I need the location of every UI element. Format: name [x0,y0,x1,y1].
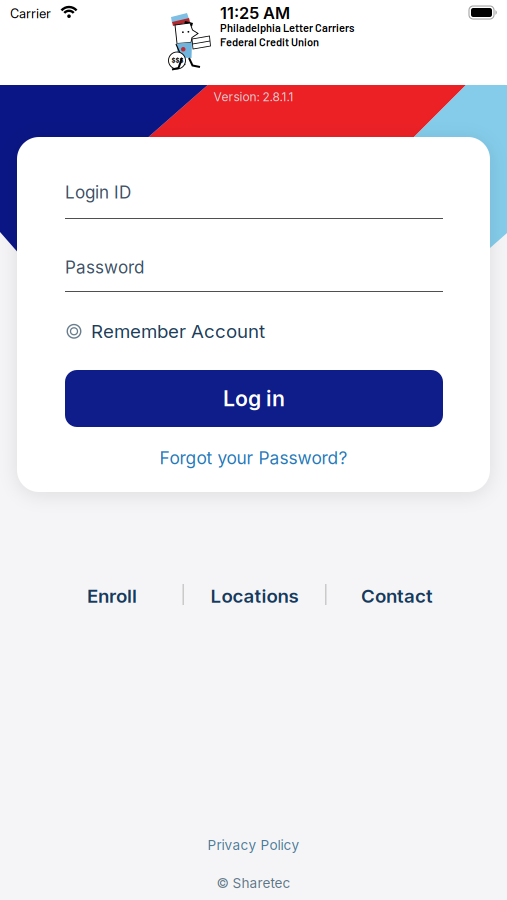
staticText: Version: 2.8.1.1 [213,90,293,104]
staticText: Remember Account [91,320,265,343]
staticText: Federal Credit Union [220,35,319,49]
button[interactable]: Enroll [87,585,137,607]
staticText: Philadelphia Letter Carriers [220,21,354,34]
staticText: © Sharetec [216,875,290,891]
button[interactable]: Locations [210,585,298,607]
button[interactable]: Password text field [65,257,443,292]
staticText: Privacy Policy [207,837,299,853]
staticText: $$$ [171,57,183,64]
button[interactable]: Forgot your Password? [159,447,347,468]
staticText: Carrier [10,6,51,21]
staticText: Contact [361,585,433,607]
button[interactable]: Remember Account [67,320,265,343]
staticText: 11:25 AM [220,3,290,23]
staticText: Password [65,257,144,278]
staticText: Locations [210,585,298,607]
staticText: Enroll [87,585,137,607]
button[interactable]: Privacy Policy [207,837,299,853]
staticText: Log in [223,386,285,411]
button[interactable]: Log in [65,370,443,427]
button[interactable]: Contact [361,585,433,607]
staticText: Forgot your Password? [159,447,347,468]
button[interactable]: Login ID text field [65,182,443,219]
staticText: Login ID [65,182,131,203]
